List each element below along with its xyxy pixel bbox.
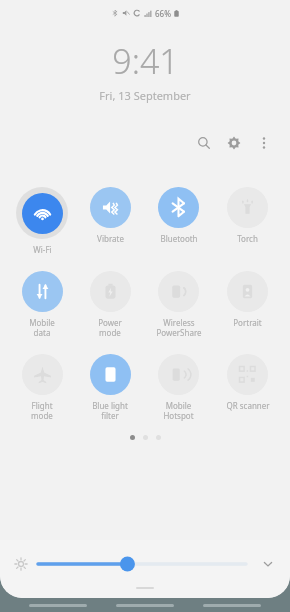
staticText: Vibrate [97,233,124,244]
staticText: 66% [155,8,171,19]
button[interactable]: Blue light filter [76,352,144,423]
staticText: Blue light filter [92,400,128,421]
button[interactable]: More options [250,129,278,157]
button[interactable]: Wi-Fi [8,185,76,257]
button[interactable]: Power mode [76,269,144,340]
button[interactable]: Bluetooth [144,185,213,246]
button[interactable]: Wireless PowerShare [144,269,213,340]
staticText: Power mode [98,317,122,338]
button[interactable]: Expand [256,552,280,576]
staticText: Flight mode [31,400,53,421]
staticText: Wireless PowerShare [156,317,202,338]
staticText: Wi-Fi [33,244,52,255]
staticText: Mobile Hotspot [163,400,194,421]
staticText: Fri, 13 September [99,88,191,103]
staticText: 9:41 [112,38,179,84]
button[interactable]: Settings [220,129,248,157]
button[interactable]: Vibrate [76,185,144,246]
staticText: Mobile data [29,317,55,338]
button[interactable] [38,554,246,574]
staticText: QR scanner [226,400,270,411]
button[interactable]: Mobile Hotspot [144,352,213,423]
button[interactable]: Flight mode [8,352,76,423]
button[interactable]: QR scanner [213,352,282,413]
button[interactable]: Portrait [213,269,282,330]
staticText: Bluetooth [160,233,198,244]
button[interactable]: Search [190,129,218,157]
button[interactable]: Torch [213,185,282,246]
staticText: Portrait [233,317,262,328]
button[interactable]: Mobile data [8,269,76,340]
staticText: Torch [237,233,258,244]
